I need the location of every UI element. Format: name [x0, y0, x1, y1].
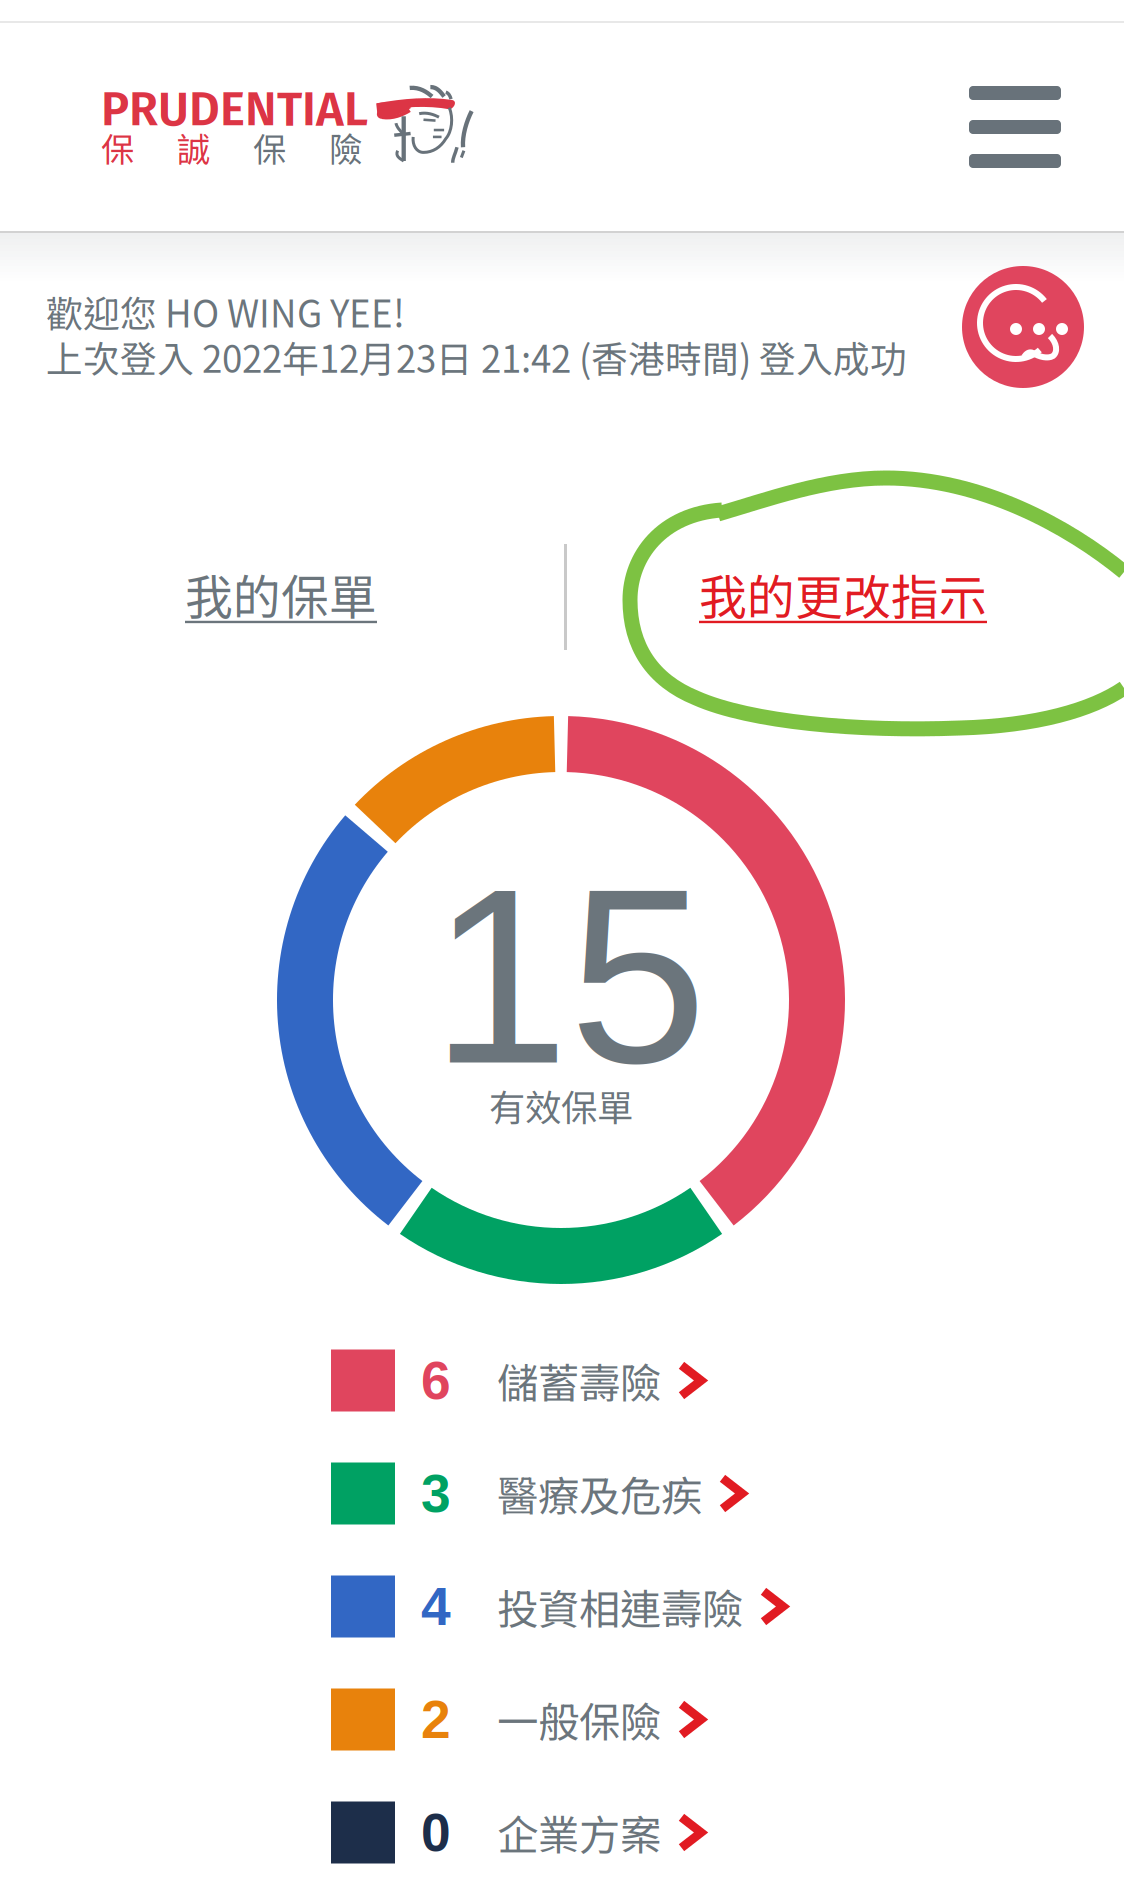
- staticText: 醫療及危疾: [497, 1464, 702, 1523]
- staticText: 保: [253, 123, 286, 171]
- button[interactable]: Menu: [939, 56, 1091, 198]
- staticText: 15: [431, 838, 707, 1115]
- staticText: 上次登入 2022年12月23日 21:42 (香港時間) 登入成功: [46, 330, 907, 383]
- staticText: 我的更改指示: [699, 559, 987, 628]
- staticText: 我的保單: [185, 559, 377, 628]
- button[interactable]: 2: [331, 1663, 841, 1776]
- staticText: 保: [101, 123, 134, 171]
- button[interactable]: 4: [331, 1550, 841, 1663]
- staticText: 6: [421, 1351, 451, 1410]
- staticText: 0: [421, 1803, 451, 1862]
- button[interactable]: PRUDENTIAL: [101, 81, 496, 181]
- staticText: 3: [421, 1464, 451, 1523]
- staticText: 有效保單: [489, 1079, 633, 1132]
- staticText: 2: [421, 1690, 451, 1749]
- staticText: PRUDENTIAL: [101, 81, 368, 138]
- button[interactable]: 我的更改指示: [562, 514, 1124, 674]
- staticText: 誠: [177, 123, 210, 171]
- staticText: 4: [421, 1577, 451, 1636]
- button[interactable]: 我的保單: [0, 514, 562, 674]
- staticText: 險: [329, 123, 362, 171]
- button[interactable]: 6: [331, 1324, 841, 1437]
- staticText: 儲蓄壽險: [497, 1351, 661, 1410]
- staticText: 一般保險: [497, 1690, 661, 1749]
- staticText: 投資相連壽險: [497, 1577, 743, 1636]
- staticText: 歡迎您 HO WING YEE!: [46, 285, 405, 338]
- button[interactable]: 0: [331, 1776, 841, 1884]
- staticText: 企業方案: [497, 1803, 661, 1862]
- button[interactable]: Chat: [962, 266, 1084, 388]
- button[interactable]: 3: [331, 1437, 841, 1550]
